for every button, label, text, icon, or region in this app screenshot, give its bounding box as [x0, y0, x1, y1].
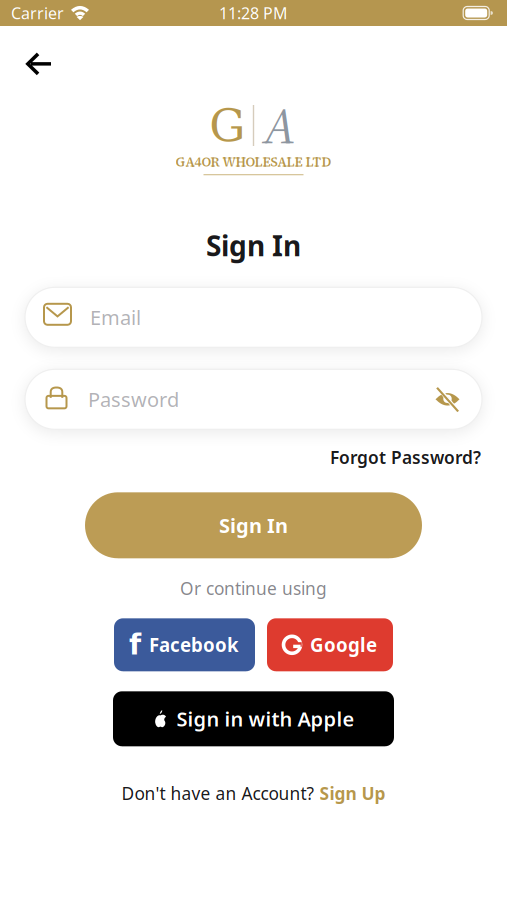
staticText: A: [264, 91, 296, 160]
staticText: Carrier: [11, 2, 64, 24]
staticText: GA4OR WHOLESALE LTD: [175, 153, 331, 171]
staticText: Sign In: [219, 512, 288, 539]
button[interactable]: Back: [0, 26, 68, 87]
button[interactable]: Show password: [435, 389, 460, 410]
staticText: Email: [90, 304, 141, 331]
staticText: Don't have an Account?: [121, 782, 314, 805]
staticText: Facebook: [149, 632, 239, 657]
staticText: f: [129, 628, 141, 661]
staticText: Sign in with Apple: [176, 705, 354, 732]
staticText: G: [209, 99, 245, 152]
staticText: 11:28 PM: [219, 2, 288, 24]
staticText: Google: [310, 632, 377, 657]
staticText: Password: [88, 386, 179, 413]
button[interactable]: f: [114, 618, 255, 671]
staticText: Forgot Password?: [330, 446, 481, 469]
button[interactable]: Google: [267, 618, 393, 671]
staticText: Or continue using: [180, 577, 327, 600]
staticText: Sign Up: [319, 782, 385, 805]
button[interactable]: Sign In: [85, 492, 422, 558]
button[interactable]: Sign Up: [319, 782, 385, 805]
button[interactable]: Sign in with Apple: [113, 691, 394, 746]
button[interactable]: Forgot Password?: [330, 446, 481, 469]
staticText: Sign In: [206, 227, 301, 264]
